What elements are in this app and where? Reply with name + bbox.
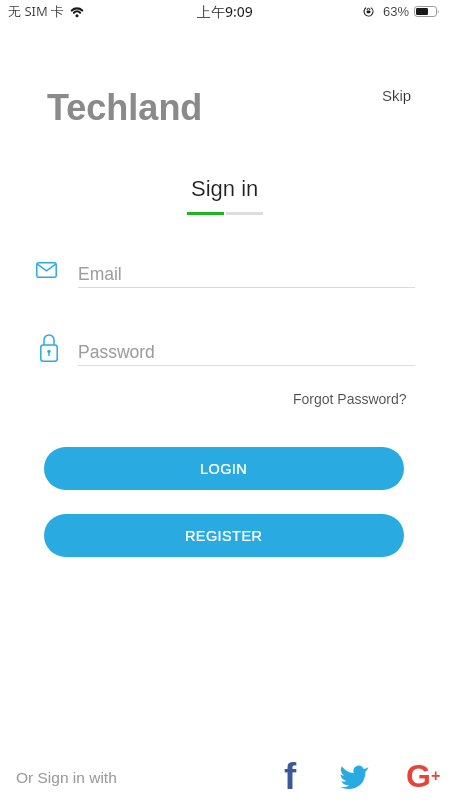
button[interactable] [340,762,369,788]
button[interactable]: Skip [374,79,420,112]
staticText: Sign in [191,176,259,201]
staticText: Forgot Password? [293,391,407,407]
staticText: Or Sign in with [16,769,117,786]
staticText: REGISTER [185,528,263,544]
staticText: LOGIN [200,461,248,477]
button[interactable]: f [276,756,304,796]
button[interactable]: G [402,756,444,796]
staticText: 63% [383,4,410,19]
staticText: Skip [382,87,412,104]
staticText: Password [78,342,155,362]
button[interactable]: Forgot Password? [293,391,407,407]
staticText: Techland [47,87,203,127]
staticText: Email [78,264,122,284]
staticText: 无 SIM 卡 [8,2,65,20]
staticText: 上午9:09 [197,2,253,21]
staticText: f [284,756,297,796]
button[interactable]: REGISTER [44,514,404,557]
button[interactable]: LOGIN [44,447,404,490]
staticText: G [406,758,431,794]
staticText: + [431,767,441,785]
